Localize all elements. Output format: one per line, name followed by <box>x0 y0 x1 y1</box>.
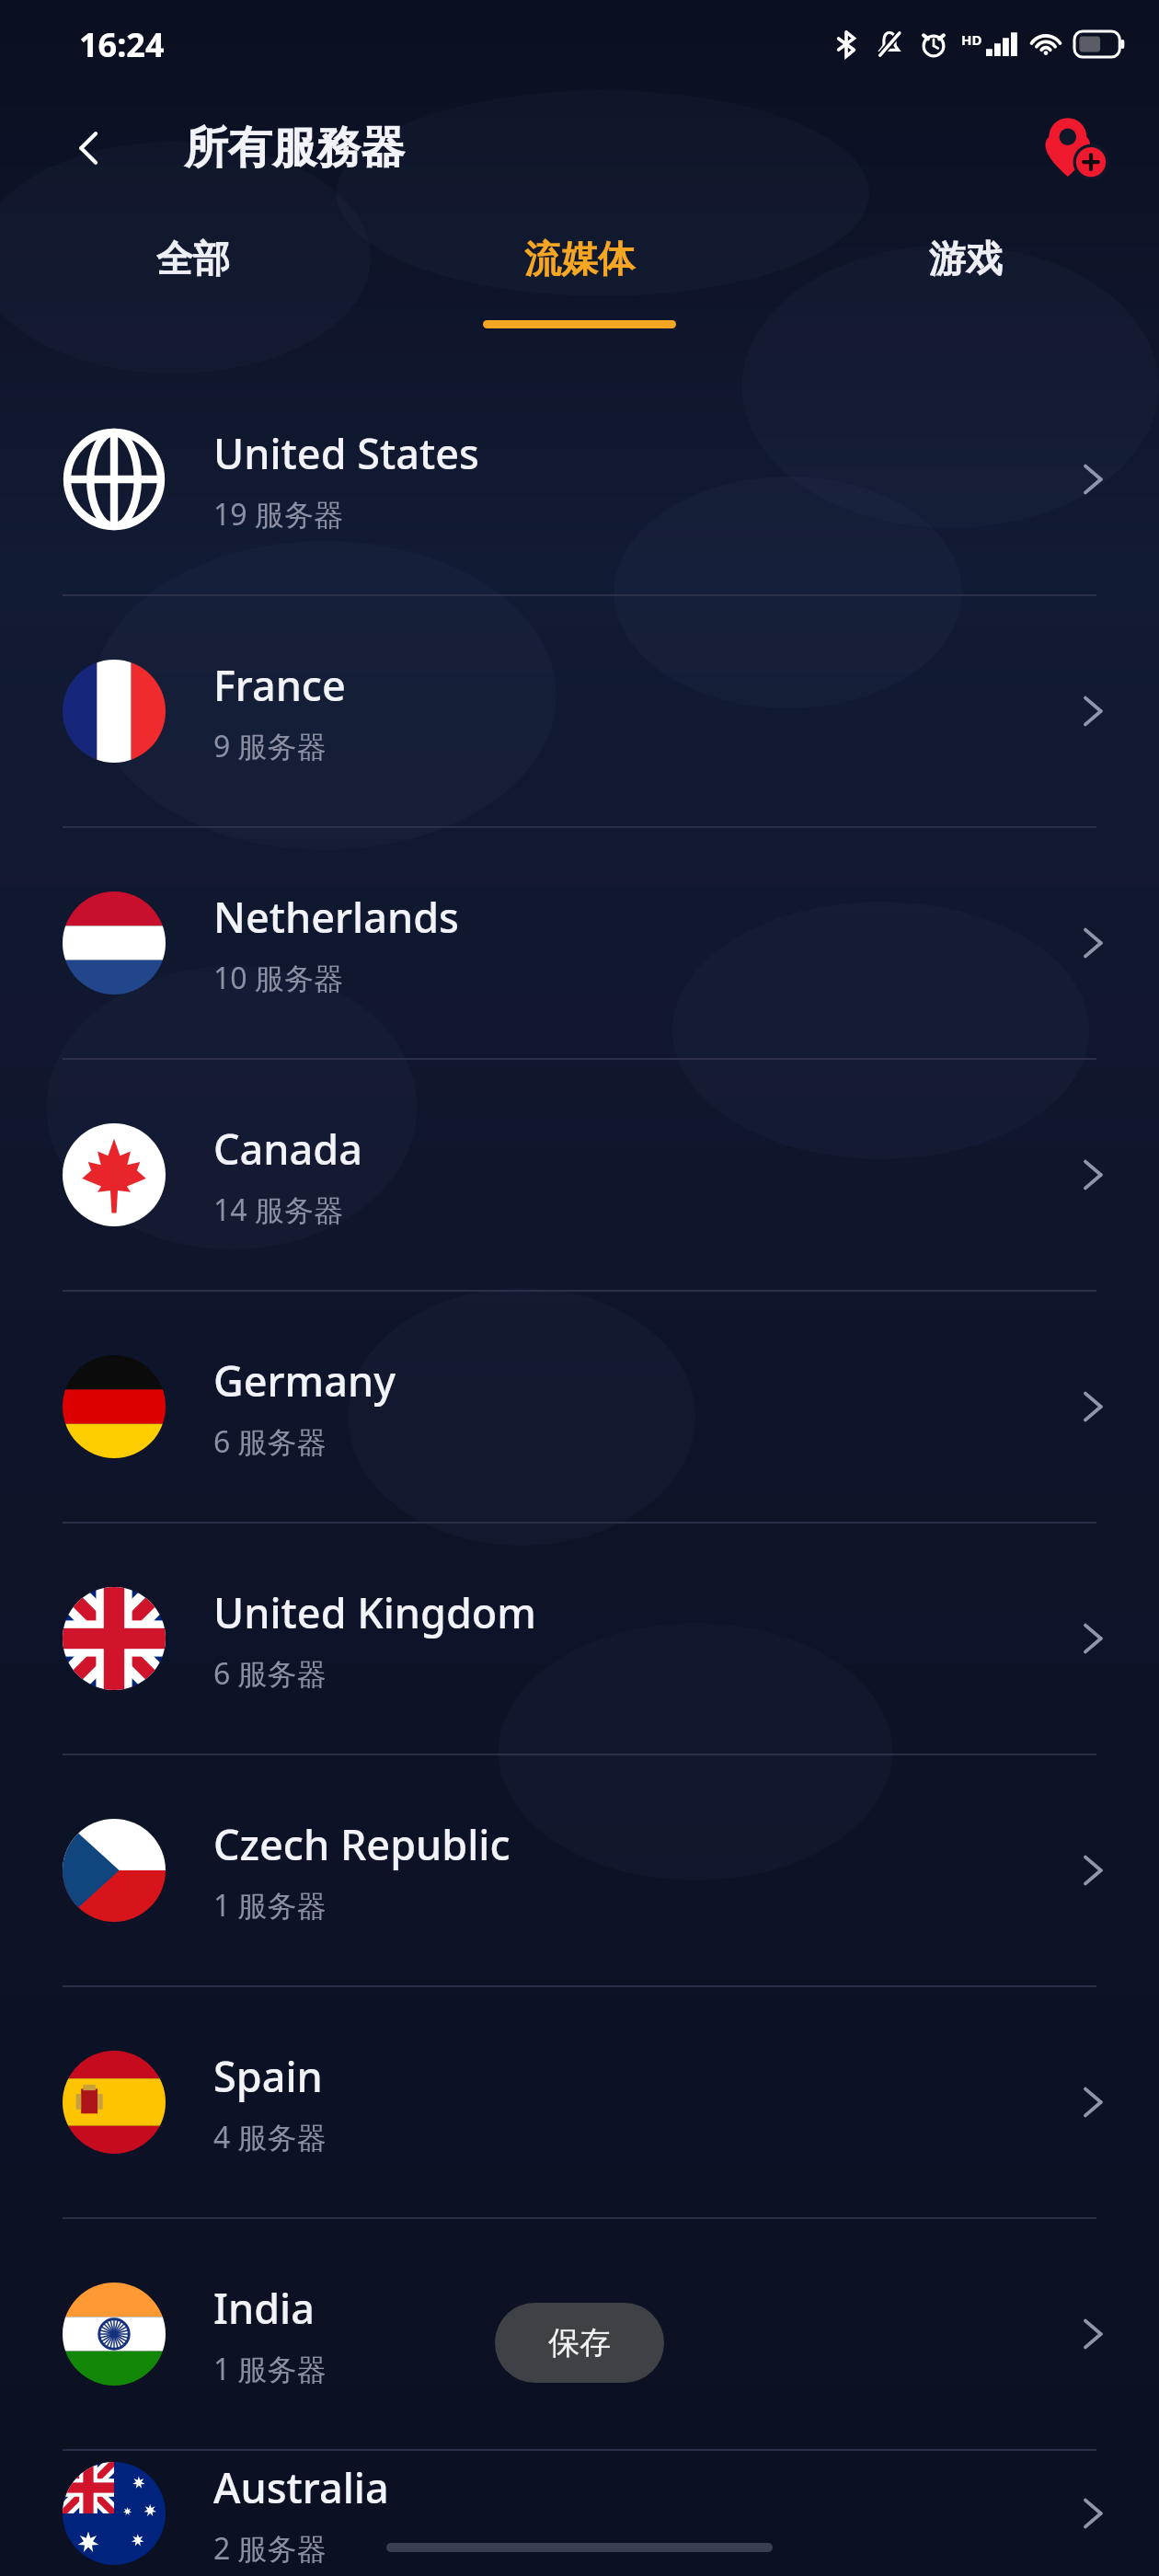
staticText: 1 服务器 <box>213 2349 327 2389</box>
staticText: HD <box>961 30 982 49</box>
staticText: 所有服務器 <box>184 121 405 176</box>
button[interactable]: Spain <box>0 1987 1159 2217</box>
staticText: 10 服务器 <box>213 958 343 998</box>
staticText: 9 服务器 <box>213 726 327 766</box>
staticText: 6 服务器 <box>213 1653 327 1694</box>
staticText: France <box>213 657 346 713</box>
button[interactable]: Czech Republic <box>0 1755 1159 1985</box>
button[interactable]: United Kingdom <box>0 1524 1159 1754</box>
button[interactable]: Germany <box>0 1292 1159 1522</box>
staticText: Germany <box>213 1352 396 1409</box>
button[interactable]: Back <box>48 107 131 190</box>
button[interactable]: Add server location <box>1030 104 1119 192</box>
staticText: 16:24 <box>79 22 165 67</box>
staticText: 6 服务器 <box>213 1421 327 1462</box>
staticText: Australia <box>213 2459 389 2515</box>
staticText: 2 服务器 <box>213 2528 327 2569</box>
button[interactable]: 保存 <box>495 2303 664 2383</box>
button[interactable]: United States <box>0 364 1159 594</box>
staticText: 1 服务器 <box>213 1885 327 1926</box>
staticText: India <box>213 2280 315 2336</box>
staticText: Spain <box>213 2048 323 2104</box>
staticText: 14 服务器 <box>213 1190 343 1230</box>
staticText: Netherlands <box>213 889 459 945</box>
staticText: 流媒体 <box>524 236 635 282</box>
staticText: United States <box>213 425 479 481</box>
staticText: 游戏 <box>929 236 1003 282</box>
button[interactable]: France <box>0 596 1159 826</box>
button[interactable]: India <box>0 2219 1159 2449</box>
button[interactable]: 全部 <box>0 208 386 364</box>
staticText: 全部 <box>156 236 230 282</box>
button[interactable]: Australia <box>0 2451 1159 2576</box>
button[interactable]: 游戏 <box>773 208 1159 364</box>
staticText: Czech Republic <box>213 1816 511 1872</box>
staticText: 19 服务器 <box>213 494 343 535</box>
button[interactable]: Netherlands <box>0 828 1159 1058</box>
button[interactable]: 流媒体 <box>386 208 773 364</box>
staticText: 4 服务器 <box>213 2117 327 2157</box>
staticText: Canada <box>213 1121 362 1177</box>
staticText: 保存 <box>548 2323 611 2363</box>
button[interactable]: Canada <box>0 1060 1159 1290</box>
staticText: United Kingdom <box>213 1584 536 1640</box>
